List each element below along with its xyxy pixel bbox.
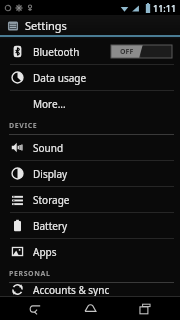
- staticText: Data usage: [33, 71, 87, 85]
- button[interactable]: More...: [0, 91, 180, 116]
- button[interactable]: Sound: [0, 135, 180, 160]
- staticText: Bluetooth: [33, 45, 80, 59]
- staticText: 11:11: [153, 2, 177, 14]
- staticText: PERSONAL: [9, 269, 51, 279]
- button[interactable]: Display: [0, 161, 180, 186]
- staticText: Accounts & sync: [33, 283, 110, 296]
- button[interactable]: Battery: [0, 213, 180, 238]
- button[interactable]: Apps: [0, 239, 180, 264]
- staticText: OFF: [120, 47, 134, 57]
- button[interactable]: Bluetooth toggle, off: [111, 45, 172, 58]
- button[interactable]: Storage: [0, 187, 180, 212]
- button[interactable]: Settings: [0, 15, 180, 35]
- staticText: Settings: [25, 18, 67, 33]
- button[interactable]: Recent apps: [125, 297, 165, 320]
- staticText: More...: [33, 97, 66, 111]
- button[interactable]: Back: [15, 297, 55, 320]
- staticText: Display: [33, 167, 68, 181]
- staticText: Storage: [33, 193, 70, 207]
- button[interactable]: Bluetooth: [0, 39, 180, 64]
- staticText: Battery: [33, 219, 68, 233]
- staticText: Sound: [33, 141, 64, 155]
- button[interactable]: Data usage: [0, 65, 180, 90]
- button[interactable]: Home: [70, 297, 110, 320]
- staticText: Apps: [33, 245, 57, 259]
- staticText: DEVICE: [9, 121, 38, 131]
- button[interactable]: Accounts & sync: [0, 283, 180, 296]
